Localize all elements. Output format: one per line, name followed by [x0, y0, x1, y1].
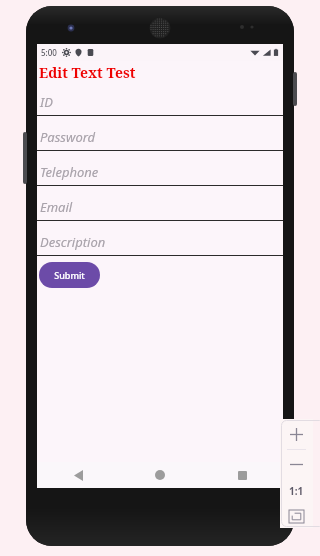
button[interactable]: Telephone [37, 153, 283, 188]
staticText: Submit [54, 269, 85, 281]
staticText: 1:1 [289, 484, 304, 498]
button[interactable]: Home [119, 462, 201, 488]
staticText: Telephone [40, 163, 99, 181]
button[interactable]: Description [37, 223, 283, 258]
staticText: Email [40, 198, 73, 216]
staticText: 5:00 [41, 47, 57, 58]
button[interactable]: Recent apps [201, 462, 283, 488]
button[interactable]: Actual size [280, 504, 313, 528]
button[interactable]: Submit [39, 262, 100, 288]
button[interactable]: 1:1 [280, 478, 313, 504]
button[interactable]: Back [37, 462, 119, 488]
button[interactable]: Zoom out [280, 450, 313, 478]
staticText: Description [40, 233, 106, 251]
staticText: Password [40, 128, 96, 146]
button[interactable]: Zoom in [280, 419, 313, 449]
staticText: ID [40, 93, 53, 111]
button[interactable]: Password [37, 118, 283, 153]
staticText: Edit Text Test [39, 63, 136, 82]
button[interactable]: Email [37, 188, 283, 223]
button[interactable]: ID [37, 83, 283, 118]
